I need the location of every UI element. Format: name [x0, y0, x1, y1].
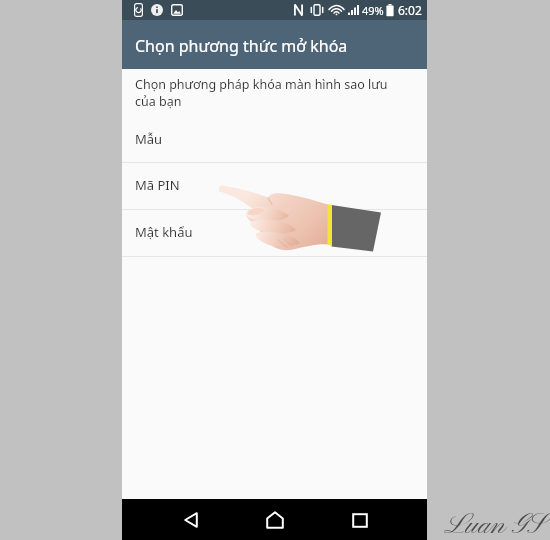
staticText: Chọn phương thức mở khóa [135, 35, 348, 57]
button[interactable]: Back [171, 500, 211, 540]
button[interactable]: Chọn phương pháp khóa màn hình sao lưu c… [122, 69, 427, 162]
staticText: 6:02 [398, 2, 422, 18]
staticText: 49% [362, 3, 384, 18]
staticText: Mẫu [135, 130, 163, 148]
staticText: Mã PIN [135, 176, 180, 194]
button[interactable]: Mã PIN [122, 163, 427, 209]
staticText: Chọn phương pháp khóa màn hình sao lưu c… [135, 76, 397, 110]
staticText: Mật khẩu [135, 223, 193, 241]
staticText: Luan GS [444, 508, 543, 540]
button[interactable]: Recent apps [340, 500, 380, 540]
button[interactable]: Home [255, 500, 295, 540]
button[interactable]: Chọn phương thức mở khóa [122, 20, 427, 69]
button[interactable]: Mật khẩu [122, 210, 427, 256]
